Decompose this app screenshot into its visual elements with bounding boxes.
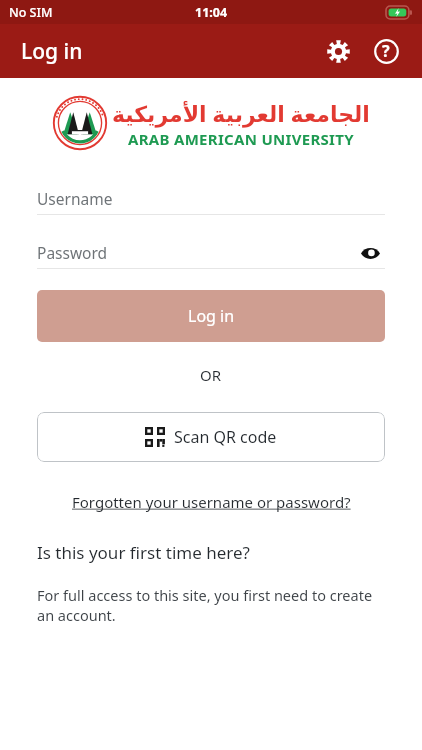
button[interactable]: Settings — [316, 29, 360, 73]
staticText: ? — [382, 40, 390, 62]
staticText: Log in — [21, 37, 83, 66]
button[interactable]: Password — [37, 237, 385, 269]
staticText: No SIM — [9, 4, 53, 21]
button[interactable]: Scan QR code — [37, 412, 385, 462]
button[interactable]: Show password — [355, 238, 385, 268]
staticText: OR — [200, 365, 222, 385]
staticText: ARAB AMERICAN UNIVERSITY — [128, 129, 354, 149]
staticText: For full access to this site, you first … — [37, 585, 385, 626]
staticText: Password — [37, 242, 108, 263]
staticText: الجامعة العربية الأمريكية — [112, 98, 370, 128]
button[interactable]: Log in — [37, 290, 385, 342]
staticText: Scan QR code — [174, 426, 277, 448]
staticText: Is this your first time here? — [37, 541, 250, 564]
staticText: 11:04 — [195, 4, 228, 21]
button[interactable]: Username — [37, 183, 385, 215]
button[interactable]: Help — [364, 29, 408, 73]
staticText: Username — [37, 188, 113, 209]
staticText: Log in — [188, 305, 235, 327]
button[interactable]: Forgotten your username or password? — [72, 492, 351, 512]
